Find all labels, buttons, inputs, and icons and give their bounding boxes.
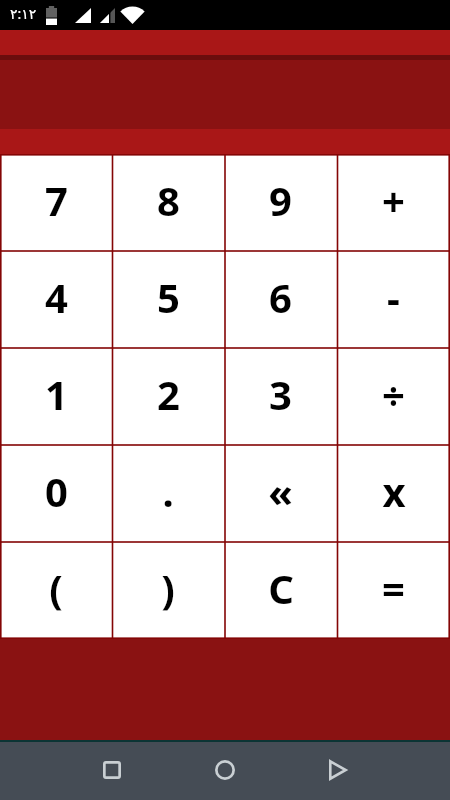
staticText: -: [387, 270, 400, 324]
staticText: ۲:۱۲: [10, 4, 37, 23]
button[interactable]: 3: [224, 348, 337, 445]
staticText: .: [162, 464, 174, 518]
button[interactable]: ÷: [337, 348, 450, 445]
staticText: 8: [157, 173, 180, 227]
button[interactable]: C: [224, 542, 337, 639]
staticText: C: [268, 561, 294, 615]
staticText: 5: [157, 270, 180, 324]
button[interactable]: 7: [0, 154, 112, 251]
staticText: 7: [45, 173, 68, 227]
staticText: 9: [269, 173, 292, 227]
staticText: (: [49, 561, 63, 615]
button[interactable]: x: [337, 445, 450, 542]
staticText: x: [382, 464, 406, 518]
button[interactable]: +: [337, 154, 450, 251]
staticText: ): [161, 561, 175, 615]
button[interactable]: Recent apps: [55, 740, 168, 800]
button[interactable]: -: [337, 251, 450, 348]
button[interactable]: 9: [224, 154, 337, 251]
button[interactable]: .: [112, 445, 224, 542]
button[interactable]: =: [337, 542, 450, 639]
staticText: «: [268, 464, 293, 518]
staticText: 0: [45, 464, 68, 518]
staticText: +: [382, 173, 405, 227]
button[interactable]: 5: [112, 251, 224, 348]
staticText: 2: [157, 367, 180, 421]
button[interactable]: 8: [112, 154, 224, 251]
button[interactable]: 0: [0, 445, 112, 542]
button[interactable]: «: [224, 445, 337, 542]
staticText: 6: [269, 270, 292, 324]
staticText: ÷: [382, 367, 405, 421]
staticText: 4: [45, 270, 68, 324]
button[interactable]: Home: [168, 740, 281, 800]
button[interactable]: (: [0, 542, 112, 639]
button[interactable]: ): [112, 542, 224, 639]
staticText: =: [382, 561, 405, 615]
button[interactable]: 4: [0, 251, 112, 348]
button[interactable]: 2: [112, 348, 224, 445]
staticText: 3: [269, 367, 292, 421]
button[interactable]: 1: [0, 348, 112, 445]
staticText: 1: [45, 367, 68, 421]
button[interactable]: 6: [224, 251, 337, 348]
button[interactable]: Back: [281, 740, 394, 800]
